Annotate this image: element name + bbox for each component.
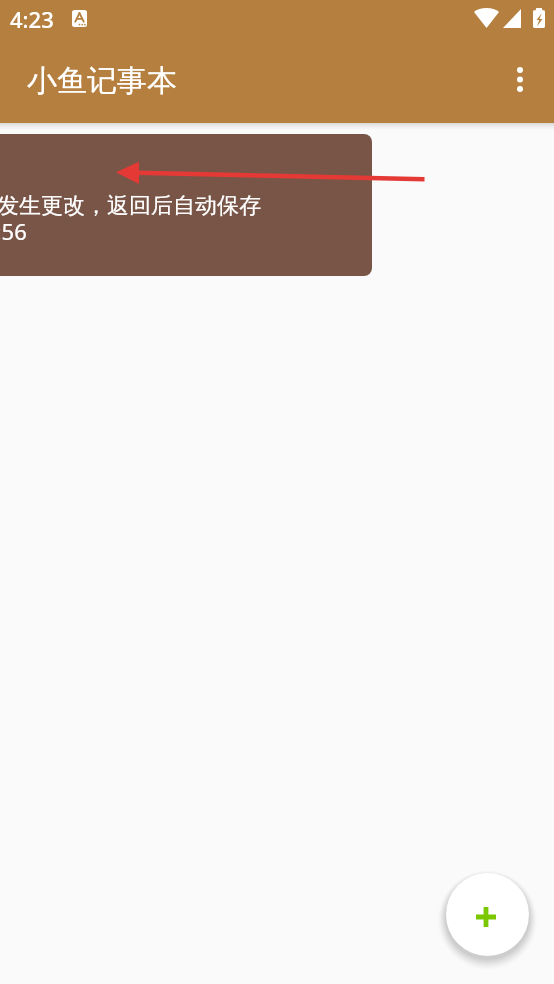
- button[interactable]: 编辑便签时内容发生更改，返回后自动保存: [0, 134, 372, 276]
- staticText: 小鱼记事本: [27, 62, 177, 100]
- staticText: 2024-05-18 16:56: [0, 216, 27, 246]
- button[interactable]: Add note: [446, 873, 529, 956]
- staticText: 4:23: [10, 4, 54, 34]
- staticText: 编辑便签时内容发生更改，返回后自动保存: [0, 192, 261, 220]
- button[interactable]: More options: [497, 56, 543, 102]
